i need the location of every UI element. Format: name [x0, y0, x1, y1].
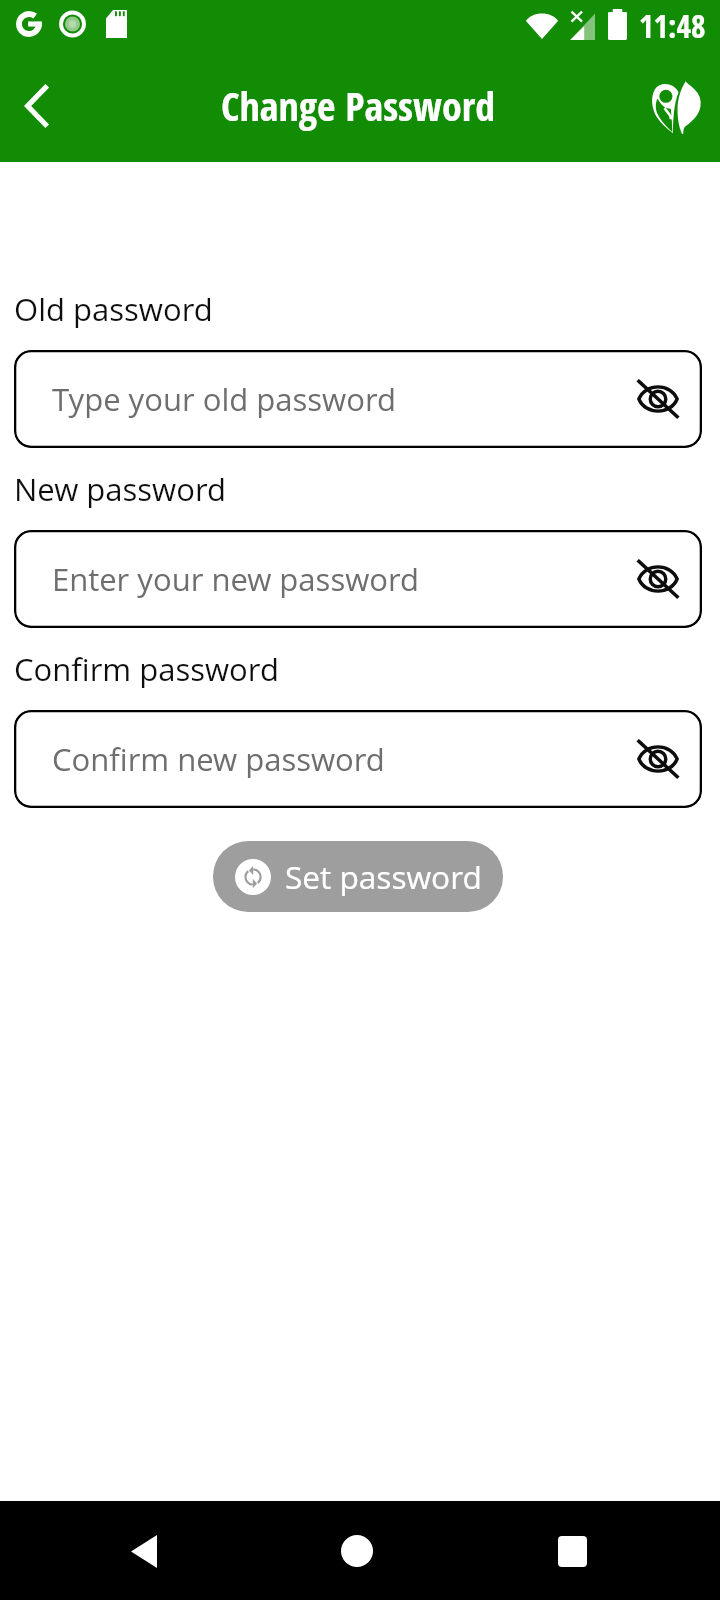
button[interactable]: Type your old password: [14, 350, 702, 448]
staticText: Confirm password: [14, 648, 279, 690]
button[interactable]: Back: [96, 1503, 192, 1599]
button[interactable]: Show password: [618, 719, 698, 799]
button[interactable]: Enter your new password: [14, 530, 702, 628]
button[interactable]: Set password: [213, 841, 503, 912]
button[interactable]: Confirm new password: [14, 710, 702, 808]
button[interactable]: Show password: [618, 359, 698, 439]
button[interactable]: Recents: [524, 1503, 620, 1599]
staticText: Type your old password: [52, 378, 396, 420]
button[interactable]: App logo: [631, 65, 719, 153]
button[interactable]: Home: [309, 1503, 405, 1599]
staticText: Change Password: [221, 78, 496, 132]
button[interactable]: Show password: [618, 539, 698, 619]
button[interactable]: Back: [0, 63, 82, 155]
staticText: Set password: [285, 855, 482, 898]
staticText: Enter your new password: [52, 558, 420, 600]
staticText: Confirm new password: [52, 738, 385, 780]
staticText: New password: [14, 468, 226, 510]
staticText: 11:48: [639, 4, 706, 47]
staticText: Old password: [14, 288, 213, 330]
